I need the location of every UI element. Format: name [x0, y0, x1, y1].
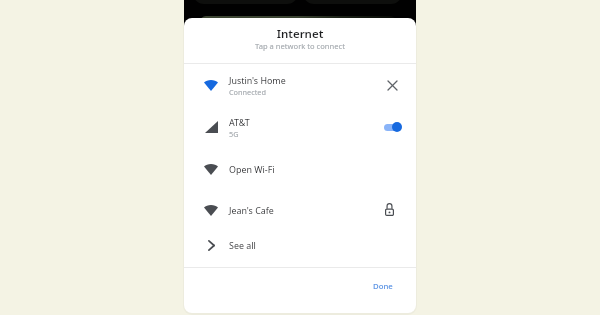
staticText: See all: [229, 239, 256, 251]
staticText: Tap a network to connect: [184, 41, 416, 51]
button[interactable]: Jean's Cafe: [184, 190, 416, 230]
button[interactable]: Done: [367, 275, 399, 297]
button[interactable]: Justin's Home: [184, 65, 416, 105]
staticText: Connected: [229, 87, 266, 97]
button[interactable]: Open Wi-Fi: [184, 149, 416, 189]
staticText: Done: [373, 281, 393, 292]
button[interactable]: Mobile data toggle: [382, 118, 406, 136]
staticText: Open Wi-Fi: [229, 163, 275, 175]
button[interactable]: See all: [184, 225, 416, 265]
staticText: Justin's Home: [229, 74, 286, 86]
button[interactable]: AT&T: [184, 107, 416, 147]
button[interactable]: Disconnect from Justin's Home: [381, 74, 403, 96]
staticText: AT&T: [229, 116, 250, 128]
staticText: 5G: [229, 129, 239, 139]
staticText: Jean's Cafe: [229, 204, 274, 216]
staticText: Internet: [184, 26, 416, 42]
other: Secured network: [378, 199, 400, 221]
